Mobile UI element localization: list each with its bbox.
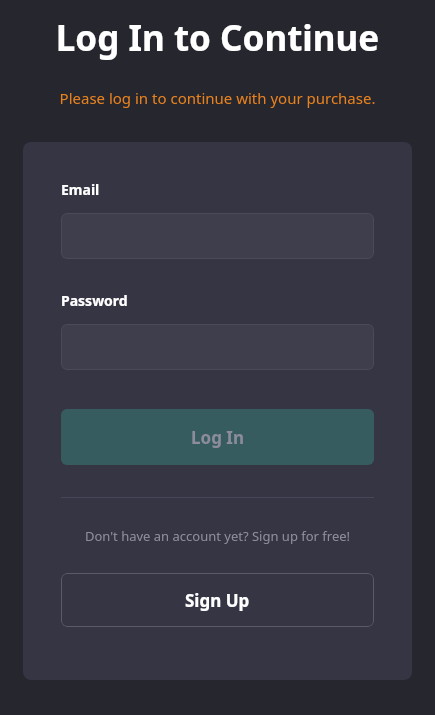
staticText: Log In bbox=[191, 426, 244, 449]
staticText: Please log in to continue with your purc… bbox=[0, 88, 435, 108]
staticText: Don't have an account yet? Sign up for f… bbox=[61, 527, 374, 545]
staticText: Sign Up bbox=[185, 589, 250, 612]
button[interactable]: Log In bbox=[61, 409, 374, 465]
staticText: Email bbox=[61, 180, 100, 199]
button[interactable]: Sign Up bbox=[61, 573, 374, 627]
staticText: Log In to Continue bbox=[0, 14, 435, 62]
staticText: Password bbox=[61, 291, 128, 310]
